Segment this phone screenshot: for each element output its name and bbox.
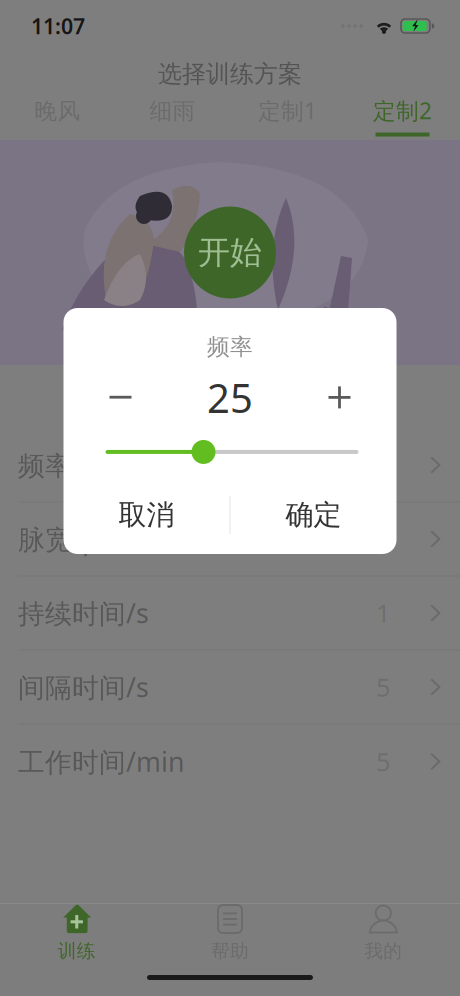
staticText: 持续时间/s xyxy=(18,595,149,631)
staticText: 帮助 xyxy=(211,939,249,962)
staticText: 频率/Hz xyxy=(18,447,115,483)
button[interactable]: 定制2 xyxy=(345,96,460,140)
staticText: 脉宽/μs xyxy=(18,521,112,557)
staticText: 确定 xyxy=(285,498,341,532)
button[interactable]: 晚风 xyxy=(0,96,115,140)
button[interactable]: 脉宽/μs xyxy=(0,502,460,576)
button[interactable]: 开始 xyxy=(184,206,276,298)
staticText: 我的 xyxy=(364,939,402,962)
staticText: 工作时间/min xyxy=(18,744,184,779)
button[interactable]: 频率/Hz xyxy=(0,428,460,502)
button[interactable]: 帮助 xyxy=(153,903,307,996)
staticText: 25 xyxy=(207,371,253,424)
staticText: 训练 xyxy=(58,939,96,962)
button[interactable]: 取消 xyxy=(63,486,229,544)
button[interactable]: Decrease frequency xyxy=(95,372,145,422)
button[interactable]: 我的 xyxy=(307,903,460,996)
staticText: 取消 xyxy=(118,498,174,532)
staticText: 开始 xyxy=(198,233,262,272)
staticText: 频率 xyxy=(207,333,253,361)
button[interactable]: 定制1 xyxy=(230,96,345,140)
button[interactable]: Increase frequency xyxy=(314,372,364,422)
staticText: 5 xyxy=(376,670,390,704)
button[interactable]: 工作时间/min xyxy=(0,724,460,798)
button[interactable]: 持续时间/s xyxy=(0,576,460,650)
staticText: 11:07 xyxy=(31,12,85,40)
staticText: 定制1 xyxy=(258,95,317,125)
staticText: 间隔时间/s xyxy=(18,669,149,705)
staticText: 定制2 xyxy=(373,95,432,125)
staticText: 细雨 xyxy=(149,97,195,125)
staticText: 5 xyxy=(376,745,390,778)
button[interactable]: 确定 xyxy=(230,486,396,544)
staticText: 晚风 xyxy=(34,97,80,125)
staticText: 选择训练方案 xyxy=(158,59,302,89)
button[interactable]: 训练 xyxy=(0,903,153,996)
button[interactable]: 细雨 xyxy=(115,96,230,140)
button[interactable]: 间隔时间/s xyxy=(0,650,460,724)
staticText: 1 xyxy=(376,596,390,630)
